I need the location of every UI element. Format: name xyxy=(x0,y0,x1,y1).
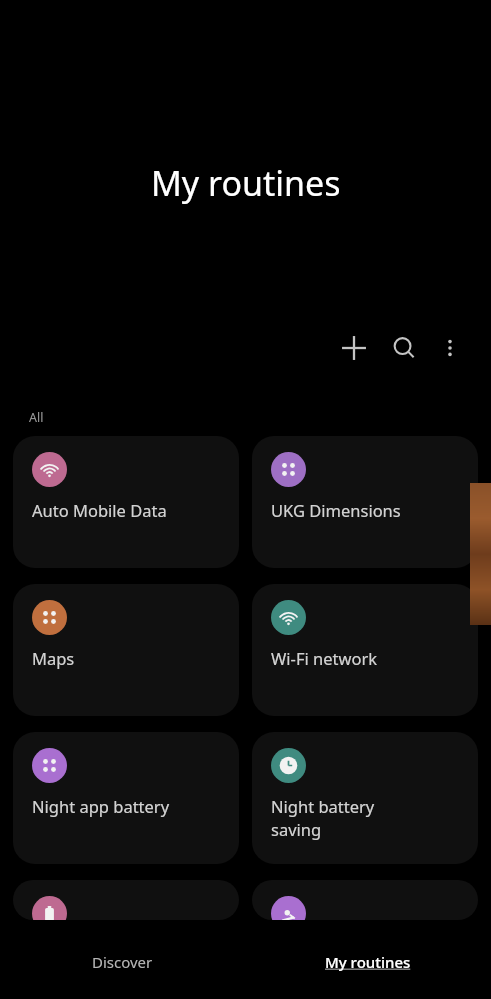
button[interactable]: Maps xyxy=(13,584,239,716)
staticText: Discover xyxy=(92,952,153,972)
staticText: My routines xyxy=(151,160,341,206)
button[interactable]: Night app battery xyxy=(13,732,239,864)
button[interactable]: Auto Mobile Data xyxy=(13,436,239,568)
button[interactable]: Search xyxy=(382,326,426,370)
button[interactable]: My routines xyxy=(245,925,491,999)
staticText: Auto Mobile Data xyxy=(32,499,167,521)
button[interactable]: Night battery saving xyxy=(252,732,478,864)
staticText: UKG Dimensions xyxy=(271,499,401,521)
staticText: My routines xyxy=(325,952,411,972)
button[interactable]: Add routine xyxy=(332,326,376,370)
button[interactable]: More options xyxy=(428,326,472,370)
button[interactable] xyxy=(252,880,478,920)
button[interactable] xyxy=(13,880,239,920)
staticText: All xyxy=(29,409,44,426)
button[interactable]: Discover xyxy=(0,925,245,999)
button[interactable]: Wi-Fi network xyxy=(252,584,478,716)
staticText: Night app battery xyxy=(32,795,170,817)
button[interactable]: UKG Dimensions xyxy=(252,436,478,568)
staticText: Night battery saving xyxy=(271,795,375,841)
staticText: Wi-Fi network xyxy=(271,647,378,669)
staticText: Maps xyxy=(32,647,75,669)
